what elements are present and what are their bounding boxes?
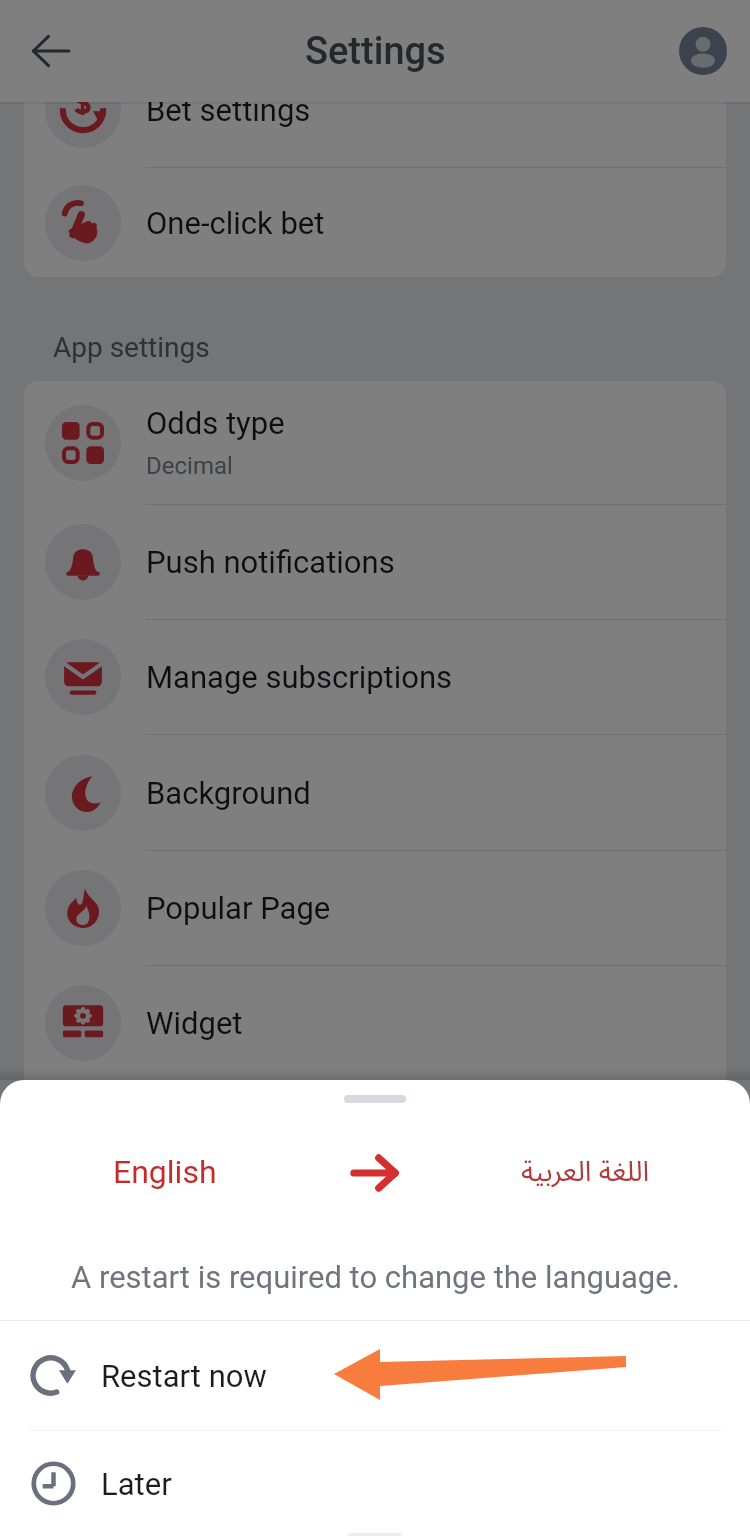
staticText: Decimal (146, 452, 233, 480)
staticText: Popular Page (146, 890, 331, 926)
button[interactable]: Background (24, 735, 726, 850)
button[interactable]: اللغة العربية (420, 1127, 750, 1217)
button[interactable]: Widget (24, 966, 726, 1080)
staticText: Restart now (101, 1358, 267, 1394)
staticText: One-click bet (146, 205, 325, 241)
staticText: Push notifications (146, 544, 395, 580)
button[interactable]: English (0, 1127, 330, 1217)
staticText: Background (146, 775, 311, 811)
staticText: App settings (53, 331, 210, 364)
staticText: A restart is required to change the lang… (71, 1259, 680, 1295)
button[interactable]: Push notifications (24, 505, 726, 619)
staticText: Settings (305, 29, 446, 74)
staticText: اللغة العربية (521, 1143, 650, 1202)
button[interactable]: Bet settings (24, 53, 726, 167)
button[interactable]: Later (0, 1431, 750, 1536)
button[interactable]: Popular Page (24, 851, 726, 965)
staticText: Later (101, 1466, 172, 1502)
staticText: Odds type (146, 405, 285, 441)
staticText: Manage subscriptions (146, 659, 453, 695)
button[interactable]: One-click bet (24, 168, 726, 277)
button[interactable]: Manage subscriptions (24, 620, 726, 734)
staticText: Widget (146, 1005, 243, 1041)
staticText: Bet settings (146, 92, 311, 128)
button[interactable]: Odds type (24, 381, 726, 504)
other: Switch language (352, 1150, 398, 1196)
button[interactable]: Restart now (0, 1321, 750, 1430)
staticText: English (113, 1153, 217, 1191)
button[interactable]: Account (670, 18, 736, 84)
button[interactable]: Back (18, 18, 84, 84)
